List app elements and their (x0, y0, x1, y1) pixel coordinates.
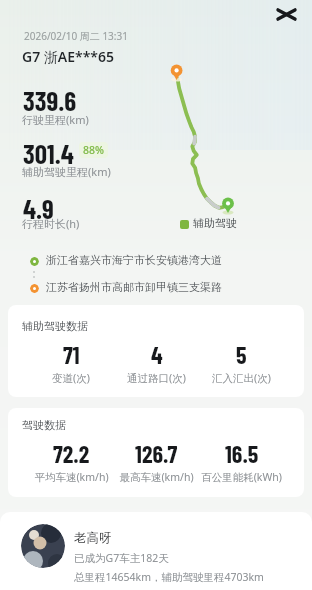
staticText: 辅助驾驶 (193, 216, 237, 230)
staticText: 汇入汇出(次) (212, 371, 271, 385)
staticText: 驾驶数据 (22, 418, 66, 432)
staticText: 辅助驾驶数据 (22, 319, 88, 333)
staticText: 126.7 (135, 439, 178, 468)
staticText: 百公里能耗(kWh) (201, 470, 282, 484)
staticText: 行驶里程(km) (22, 112, 89, 127)
staticText: 301.4 (23, 137, 74, 169)
staticText: 最高车速(km/h) (119, 470, 194, 484)
staticText: 变道(次) (52, 371, 90, 385)
staticText: 辅助驾驶里程(km) (22, 164, 111, 179)
staticText: 通过路口(次) (127, 371, 186, 385)
staticText: 老高呀 (74, 530, 112, 546)
staticText: 16.5 (225, 439, 259, 468)
button[interactable]: 老高呀 (0, 512, 312, 590)
button[interactable]: 辅助驾驶数据 (8, 305, 304, 397)
staticText: 5 (236, 340, 247, 369)
staticText: 4.9 (23, 192, 54, 224)
staticText: 平均车速(km/h) (34, 470, 109, 484)
staticText: 浙江省嘉兴市海宁市长安镇港湾大道 (46, 253, 222, 267)
staticText: G7 浙AE***65 (22, 47, 114, 66)
staticText: 总里程14654km，辅助驾驶里程4703km (74, 570, 264, 584)
staticText: 2026/02/10 周二 13:31 (24, 29, 128, 43)
staticText: 72.2 (53, 439, 90, 468)
staticText: 88% (83, 143, 104, 157)
staticText: 339.6 (23, 84, 77, 116)
button[interactable] (272, 4, 300, 26)
staticText: 71 (63, 340, 80, 369)
staticText: 4 (151, 340, 163, 369)
button[interactable]: 驾驶数据 (8, 408, 304, 497)
staticText: 行程时长(h) (22, 216, 80, 231)
staticText: 已成为G7车主182天 (74, 551, 169, 565)
staticText: 江苏省扬州市高邮市卸甲镇三支渠路 (46, 280, 222, 294)
